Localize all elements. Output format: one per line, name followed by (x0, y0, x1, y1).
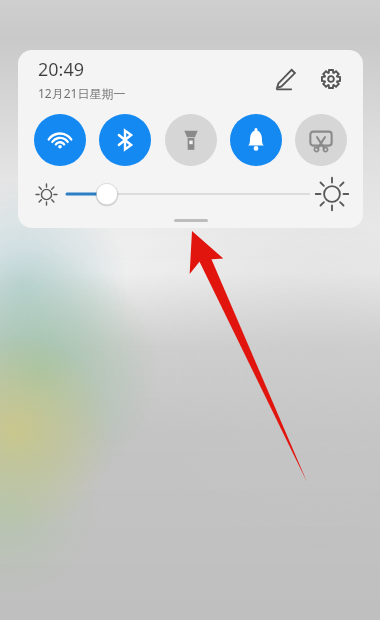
button[interactable]: Brightness (38, 172, 343, 216)
button[interactable]: Screenshot (295, 114, 347, 166)
button[interactable]: Flashlight (165, 114, 217, 166)
button[interactable]: Ring mode (230, 114, 282, 166)
button[interactable]: Settings (311, 59, 351, 99)
staticText: 12月21日星期一 (38, 85, 126, 101)
button[interactable]: Edit (265, 59, 305, 99)
staticText: 20:49 (38, 57, 85, 82)
button[interactable]: Bluetooth (99, 114, 151, 166)
button[interactable]: Wi-Fi (34, 114, 86, 166)
